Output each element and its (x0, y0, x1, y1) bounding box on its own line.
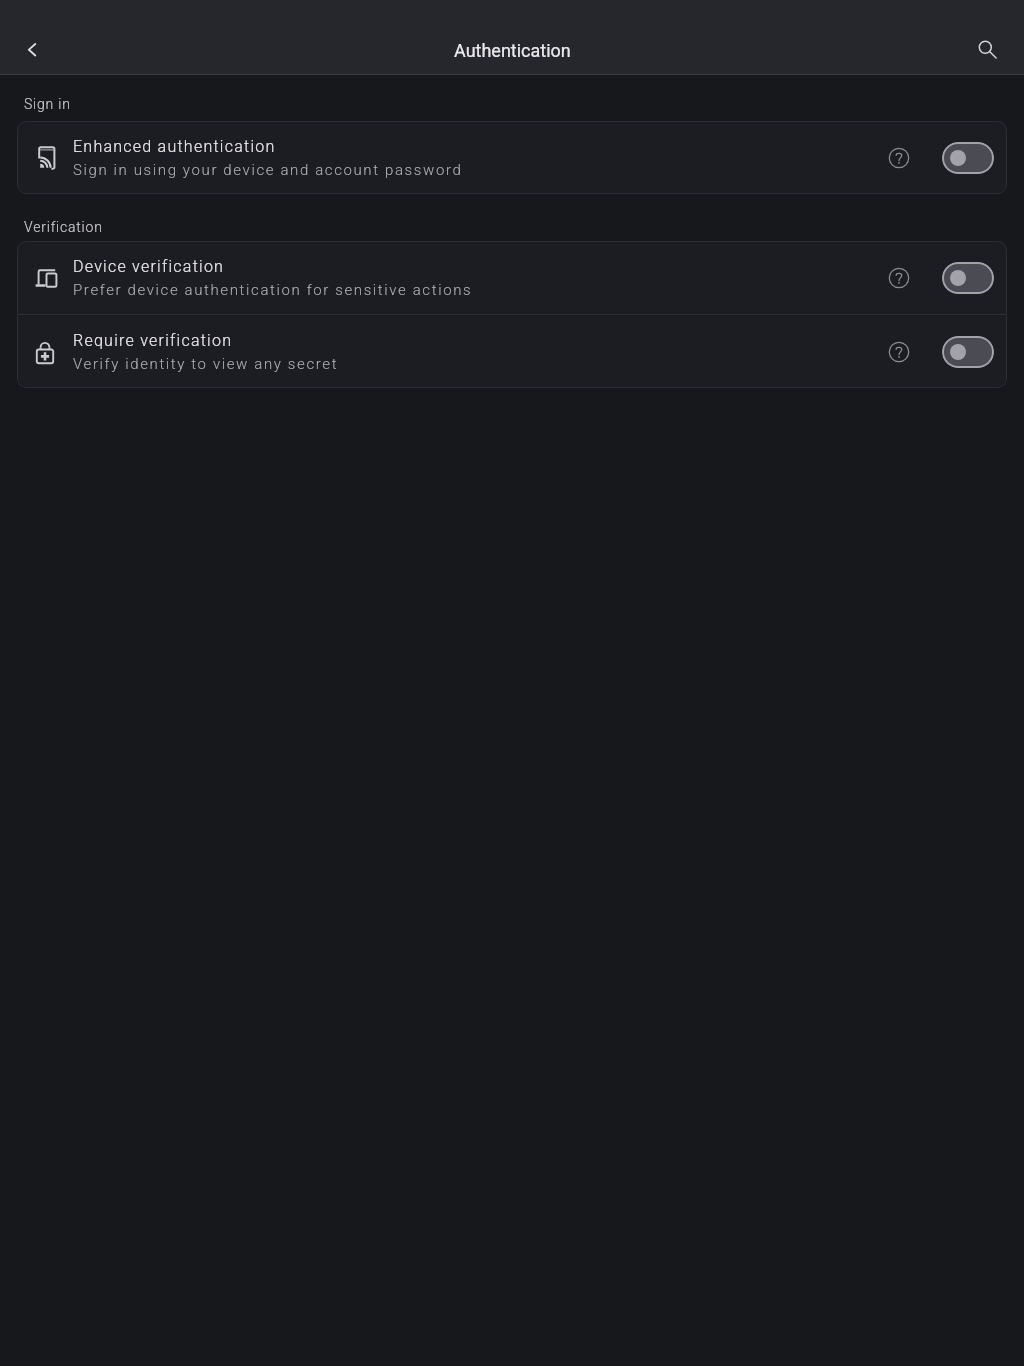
staticText: Sign in using your device and account pa… (73, 161, 463, 179)
staticText: Verify identity to view any secret (73, 355, 339, 373)
staticText: Device verification (73, 257, 225, 276)
staticText: Authentication (454, 40, 571, 61)
button[interactable]: Help (879, 258, 919, 298)
staticText: Prefer device authentication for sensiti… (73, 281, 473, 299)
button[interactable]: Toggle (942, 262, 994, 294)
button[interactable]: Require verification (17, 315, 1007, 388)
button[interactable]: Help (879, 332, 919, 372)
button[interactable]: Search (963, 23, 1011, 71)
staticText: Enhanced authentication (73, 137, 276, 156)
button[interactable]: Device verification (17, 241, 1007, 314)
button[interactable]: Toggle (942, 336, 994, 368)
button[interactable]: Toggle (942, 142, 994, 174)
staticText: Sign in (24, 96, 71, 112)
button[interactable]: Enhanced authentication (17, 121, 1007, 194)
staticText: Verification (24, 219, 103, 235)
button[interactable]: Help (879, 138, 919, 178)
staticText: Require verification (73, 331, 233, 350)
button[interactable]: Back (9, 25, 57, 73)
